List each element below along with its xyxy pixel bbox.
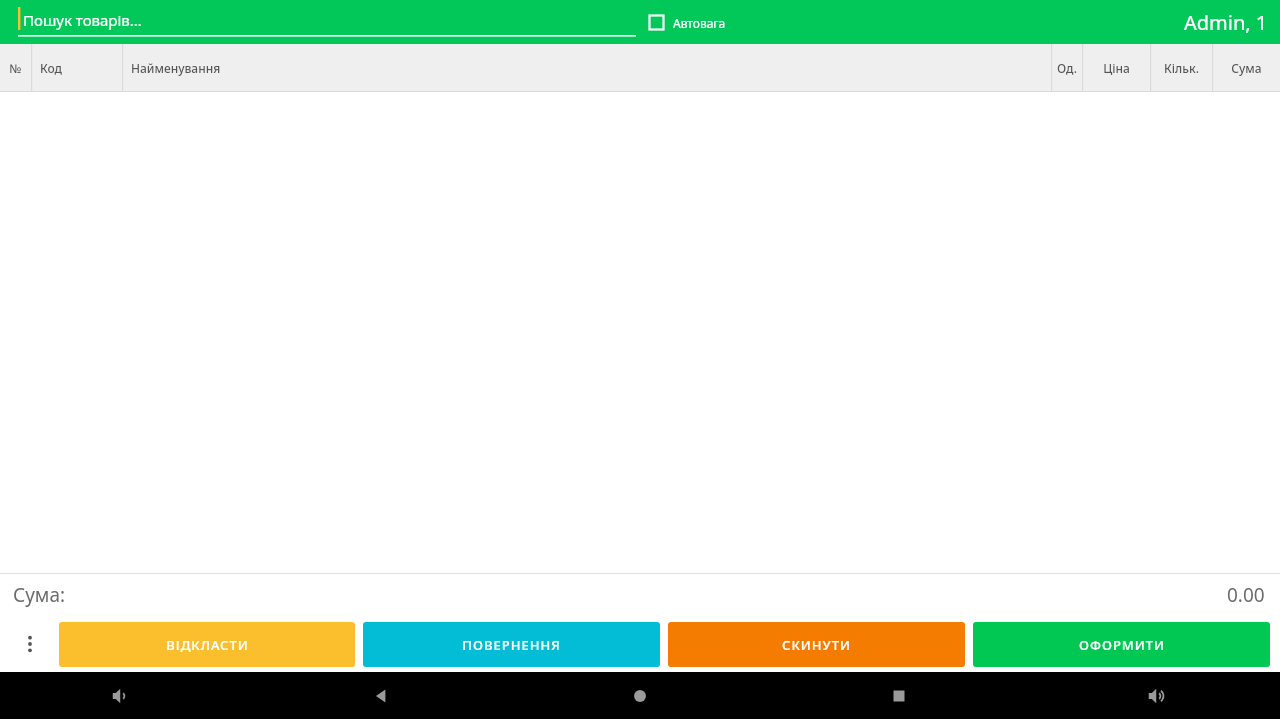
button[interactable]: Пошук товарів… [18, 7, 636, 37]
button[interactable]: More options [0, 616, 59, 672]
staticText: Кільк. [1164, 60, 1199, 76]
staticText: Од. [1057, 60, 1077, 76]
button[interactable]: ОФОРМИТИ [973, 622, 1270, 667]
button[interactable]: Ціна [1082, 44, 1150, 92]
staticText: Сума [1231, 60, 1262, 76]
button[interactable]: Автовага [648, 14, 726, 31]
button[interactable]: Admin, 1 [1184, 9, 1268, 36]
staticText: Найменування [131, 60, 221, 76]
staticText: Ціна [1103, 60, 1130, 76]
button[interactable]: ПОВЕРНЕННЯ [363, 622, 660, 667]
button[interactable]: Recents [873, 672, 925, 719]
button[interactable]: Home [614, 672, 666, 719]
staticText: 0.00 [1227, 582, 1265, 608]
button[interactable]: СКИНУТИ [668, 622, 965, 667]
staticText: ВІДКЛАСТИ [166, 636, 249, 654]
button[interactable]: Сума [1212, 44, 1280, 92]
staticText: СКИНУТИ [782, 636, 851, 654]
button[interactable]: № [0, 44, 31, 92]
button[interactable]: Од. [1051, 44, 1082, 92]
button[interactable]: Кільк. [1150, 44, 1212, 92]
button[interactable]: Найменування [122, 44, 1051, 92]
button[interactable]: Volume down [96, 672, 148, 719]
staticText: № [9, 60, 22, 76]
button[interactable]: ВІДКЛАСТИ [59, 622, 355, 667]
staticText: Пошук товарів… [23, 10, 142, 30]
button[interactable]: Back [355, 672, 407, 719]
staticText: Автовага [673, 15, 726, 31]
staticText: Сума: [13, 582, 66, 608]
staticText: ОФОРМИТИ [1079, 636, 1165, 654]
staticText: Код [40, 60, 62, 76]
staticText: ПОВЕРНЕННЯ [462, 636, 561, 654]
button[interactable]: Код [31, 44, 122, 92]
button[interactable]: Volume up [1132, 672, 1184, 719]
